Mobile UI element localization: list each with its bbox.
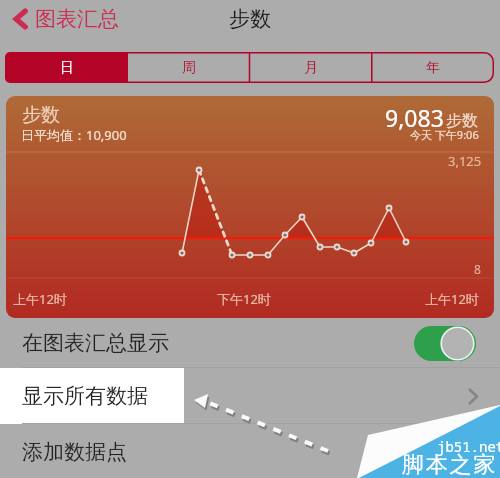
staticText: 步数	[229, 6, 271, 32]
staticText: 步数	[446, 111, 478, 131]
button[interactable]: 年	[372, 52, 494, 83]
staticText: 月	[304, 59, 318, 77]
staticText: 步数	[22, 103, 60, 127]
button[interactable]: 图表汇总	[13, 5, 119, 33]
staticText: 下午12时	[217, 290, 271, 308]
button[interactable]: 周	[128, 52, 250, 83]
staticText: 年	[426, 59, 440, 77]
staticText: 图表汇总	[35, 6, 119, 32]
button[interactable]: 月	[250, 52, 372, 83]
staticText: 上午12时	[13, 290, 67, 308]
button[interactable]: 添加数据点	[0, 424, 500, 478]
button[interactable]: Toggle chart summary	[414, 326, 476, 361]
staticText: 9,083	[385, 102, 444, 133]
staticText: 日平均值：10,900	[21, 126, 127, 144]
button[interactable]: 日	[5, 52, 128, 83]
button[interactable]: 显示所有数据	[0, 368, 500, 424]
button[interactable]: 在图表汇总显示	[0, 318, 500, 368]
staticText: 周	[182, 59, 196, 77]
staticText: 日	[60, 59, 74, 77]
staticText: 今天 下午9:06	[410, 127, 479, 142]
staticText: 脚本之家	[402, 451, 498, 478]
staticText: 显示所有数据	[22, 383, 148, 409]
staticText: 3,125	[448, 152, 482, 170]
staticText: jb51.net	[437, 437, 500, 456]
staticText: 上午12时	[425, 290, 479, 308]
staticText: 8	[474, 261, 481, 277]
staticText: 添加数据点	[22, 439, 127, 465]
staticText: 在图表汇总显示	[22, 330, 169, 356]
